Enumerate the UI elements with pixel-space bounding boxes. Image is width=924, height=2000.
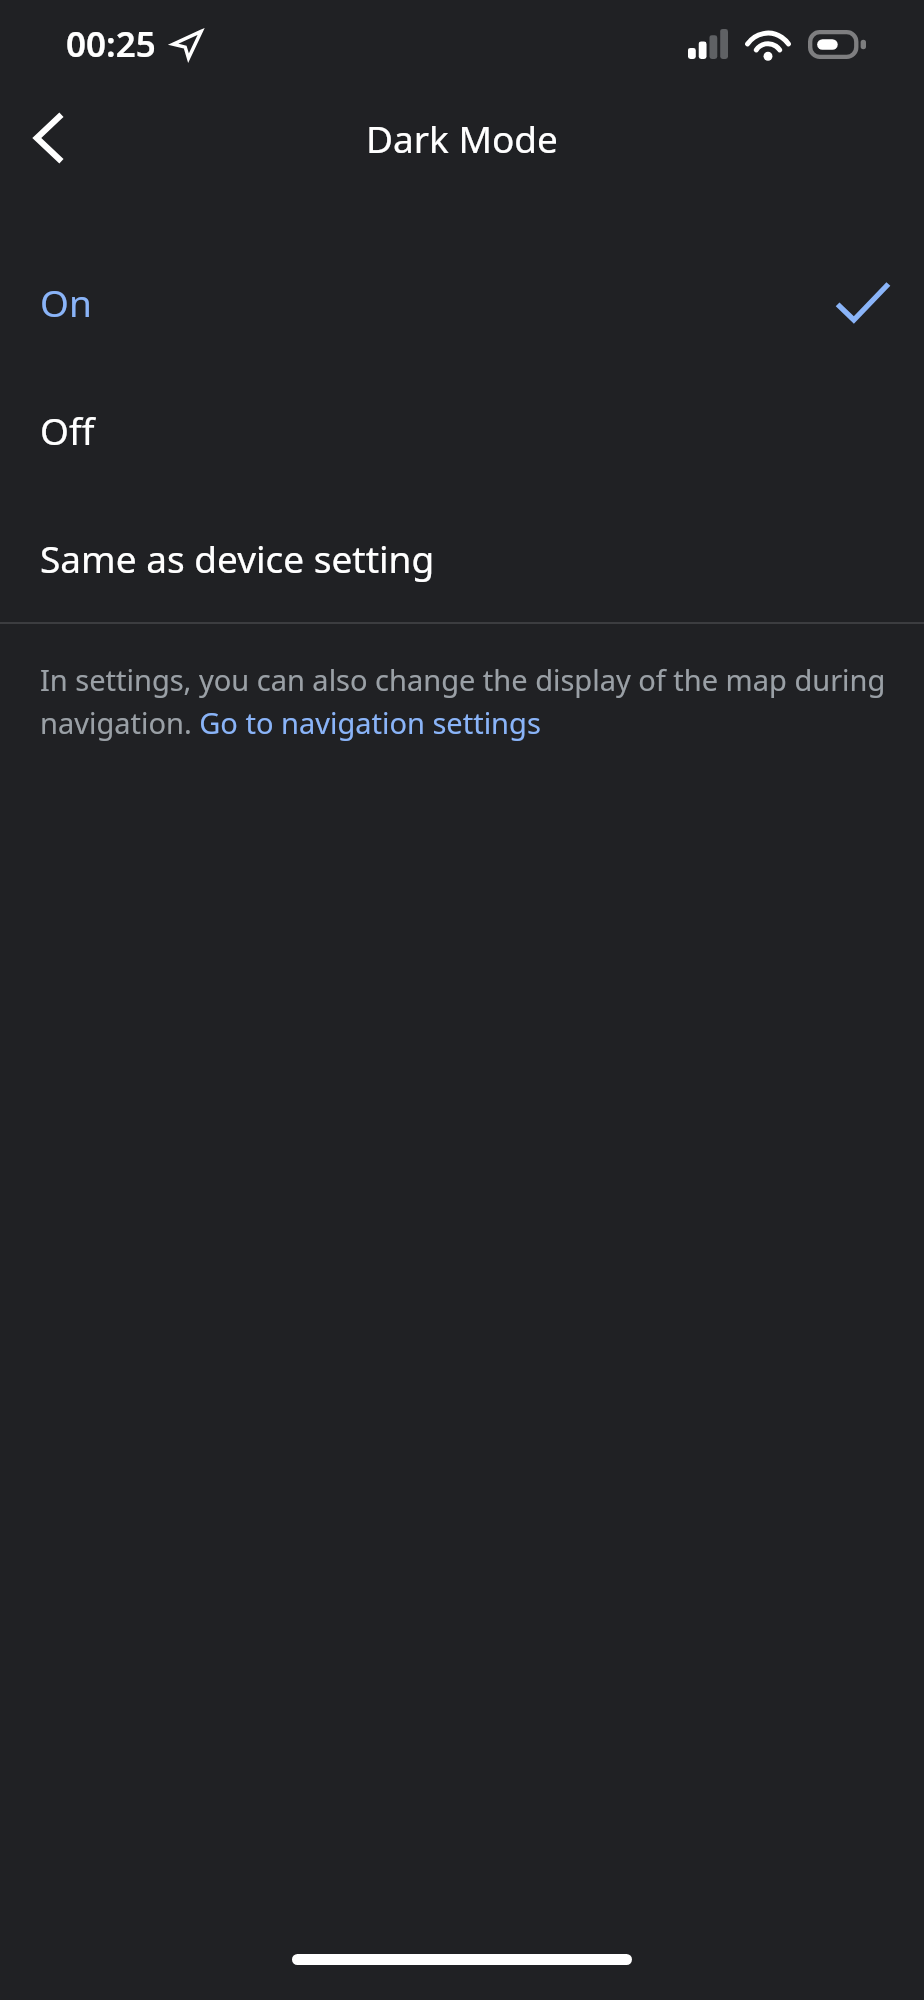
staticText: Same as device setting — [40, 533, 435, 583]
button[interactable]: In settings, you can also change the dis… — [40, 660, 888, 742]
button[interactable]: Back — [10, 100, 86, 176]
staticText: 00:25 — [66, 20, 156, 68]
button[interactable]: Off — [0, 366, 924, 494]
staticText: On — [40, 277, 92, 327]
staticText: Off — [40, 405, 95, 455]
button[interactable]: Same as device setting — [0, 494, 924, 622]
staticText: In settings, you can also change the dis… — [40, 660, 888, 742]
button[interactable]: On — [0, 238, 924, 366]
staticText: Dark Mode — [366, 113, 558, 163]
